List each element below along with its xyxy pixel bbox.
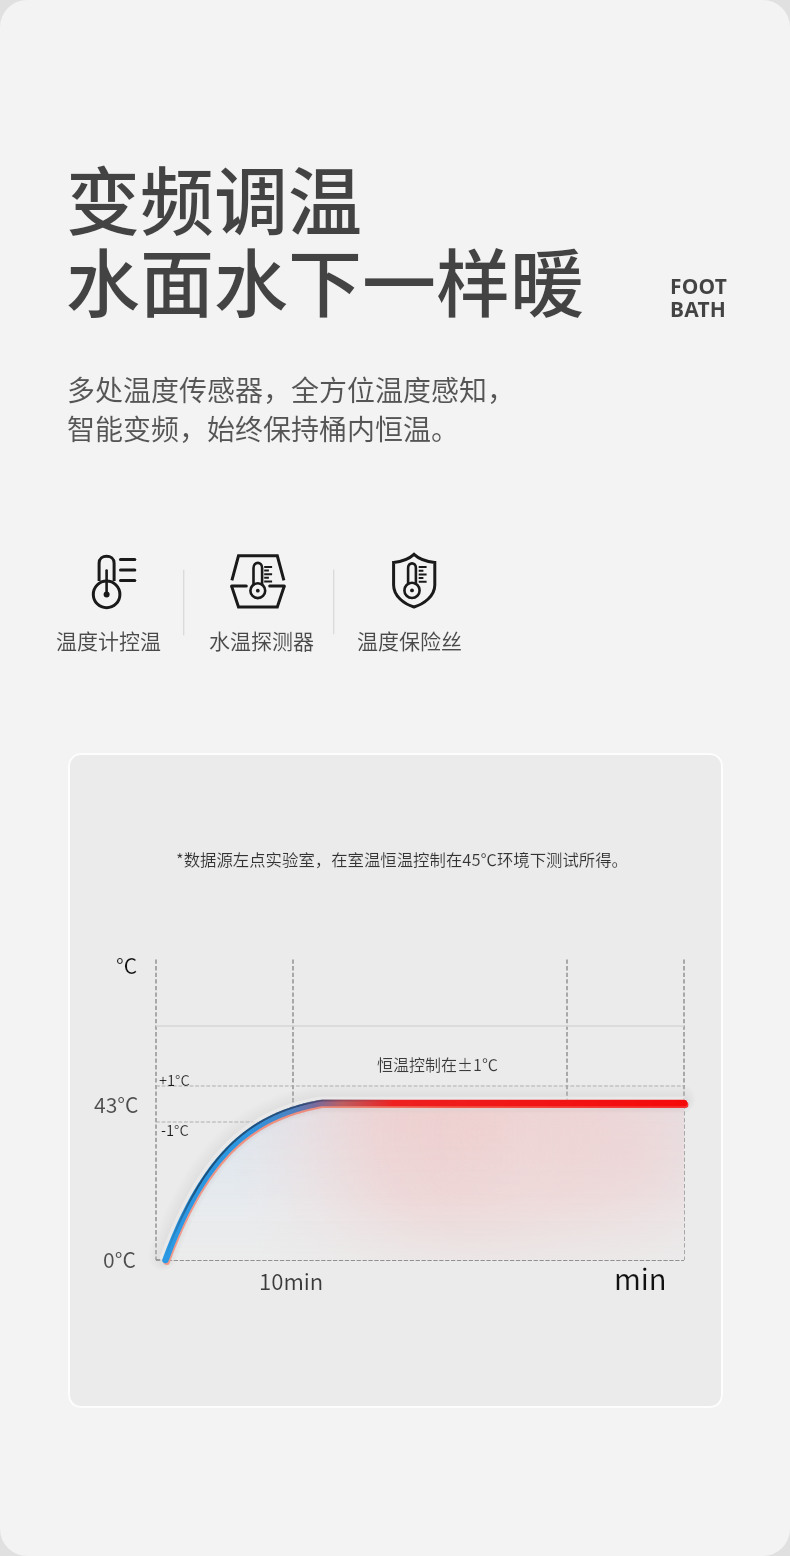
staticText: 变频调温: [66, 143, 362, 250]
button[interactable]: 温度保险丝: [357, 625, 462, 655]
button[interactable]: 水温探测器: [209, 625, 314, 655]
staticText: °C: [116, 950, 138, 980]
staticText: min: [614, 1256, 667, 1298]
staticText: -1°C: [161, 1119, 189, 1140]
staticText: 恒温控制在±1℃: [377, 1052, 498, 1075]
staticText: +1°C: [159, 1069, 190, 1090]
staticText: 水面水下一样暖: [66, 225, 584, 332]
button[interactable]: 温度保险丝: [387, 548, 447, 608]
staticText: 多处温度传感器，全方位温度感知， 智能变频，始终保持桶内恒温。: [67, 369, 516, 448]
staticText: 10min: [259, 1264, 324, 1296]
button[interactable]: 温度计控温: [56, 625, 161, 655]
staticText: FOOT BATH: [670, 272, 728, 324]
staticText: 0°C: [103, 1244, 136, 1274]
button[interactable]: 温度计控温: [86, 548, 146, 608]
staticText: 43°C: [94, 1089, 139, 1119]
button[interactable]: 水温探测器: [228, 548, 288, 608]
staticText: *数据源左点实验室，在室温恒温控制在45℃环境下测试所得。: [176, 847, 629, 871]
